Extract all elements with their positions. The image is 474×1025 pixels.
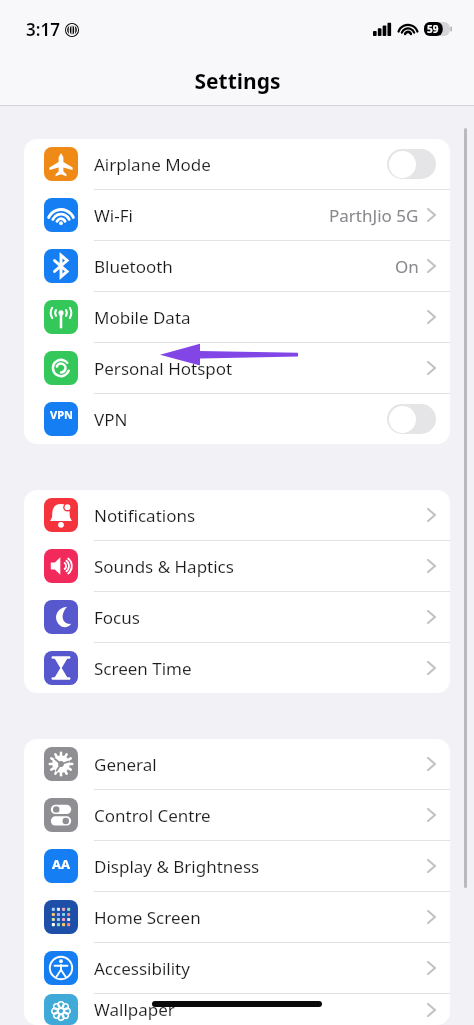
button[interactable]: Control Centre [24, 790, 450, 840]
other: VPN toggle [387, 404, 436, 434]
staticText: Sounds & Haptics [94, 555, 234, 578]
staticText: AA [52, 855, 70, 873]
button[interactable]: Home Screen [24, 892, 450, 942]
staticText: Wi-Fi [94, 204, 133, 227]
staticText: On [395, 255, 419, 278]
staticText: Notifications [94, 504, 196, 527]
button[interactable]: Bluetooth [24, 241, 450, 291]
staticText: Mobile Data [94, 306, 191, 329]
button[interactable]: VPN [24, 394, 450, 444]
button[interactable]: Mobile Data [24, 292, 450, 342]
staticText: Home Screen [94, 906, 201, 929]
button[interactable]: Display & Brightness [24, 841, 450, 891]
staticText: Airplane Mode [94, 153, 211, 176]
staticText: VPN [50, 407, 73, 422]
button[interactable]: Screen Time [24, 643, 450, 693]
staticText: Focus [94, 606, 140, 629]
staticText: Screen Time [94, 657, 192, 680]
button[interactable]: Notifications [24, 490, 450, 540]
staticText: 3:17 [26, 18, 60, 41]
staticText: 59 [427, 22, 439, 36]
staticText: Personal Hotspot [94, 357, 233, 380]
button[interactable]: General [24, 739, 450, 789]
button[interactable]: Focus [24, 592, 450, 642]
button[interactable]: Personal Hotspot [24, 343, 450, 393]
staticText: General [94, 753, 157, 776]
other: Annotation arrow [158, 337, 298, 371]
staticText: Settings [194, 67, 281, 96]
staticText: Bluetooth [94, 255, 173, 278]
staticText: Display & Brightness [94, 855, 260, 878]
button[interactable]: Wallpaper [24, 994, 450, 1025]
button[interactable]: Accessibility [24, 943, 450, 993]
staticText: Control Centre [94, 804, 211, 827]
other: Airplane Mode toggle [387, 149, 436, 179]
button[interactable]: Sounds & Haptics [24, 541, 450, 591]
staticText: Wallpaper [94, 998, 175, 1021]
staticText: ParthJio 5G [329, 204, 419, 227]
staticText: Accessibility [94, 957, 190, 980]
button[interactable]: Wi-Fi [24, 190, 450, 240]
button[interactable]: Airplane Mode [24, 139, 450, 189]
staticText: VPN [94, 408, 128, 431]
